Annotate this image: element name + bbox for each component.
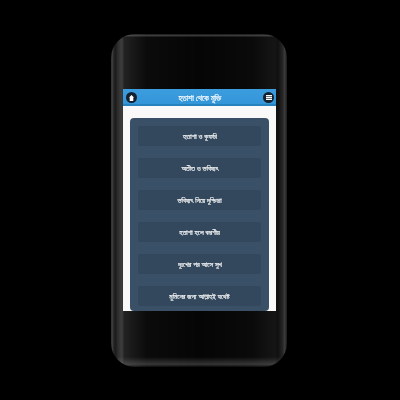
staticText: মুমিনের জন্য আল্লাহই যথেষ্ট (169, 291, 230, 301)
staticText: দুঃখের পর আসে সুখ (178, 259, 222, 269)
staticText: হতাশা ও কুফরি (183, 131, 217, 141)
staticText: অতীত ও ভবিষ্যৎ (181, 163, 219, 173)
button[interactable]: Menu (263, 92, 274, 103)
button[interactable]: অতীত ও ভবিষ্যৎ (138, 158, 261, 178)
staticText: হতাশা হলে করণীয় (179, 227, 220, 237)
button[interactable]: হতাশা হলে করণীয় (138, 222, 261, 242)
button[interactable]: Home (126, 92, 137, 103)
button[interactable]: ভবিষ্যৎ নিয়ে দুশ্চিন্তা (138, 190, 261, 210)
button[interactable]: দুঃখের পর আসে সুখ (138, 254, 261, 274)
staticText: ভবিষ্যৎ নিয়ে দুশ্চিন্তা (177, 195, 222, 205)
button[interactable]: মুমিনের জন্য আল্লাহই যথেষ্ট (138, 286, 261, 306)
staticText: হতাশা থেকে মুক্তি (137, 92, 263, 103)
button[interactable]: হতাশা ও কুফরি (138, 126, 261, 146)
